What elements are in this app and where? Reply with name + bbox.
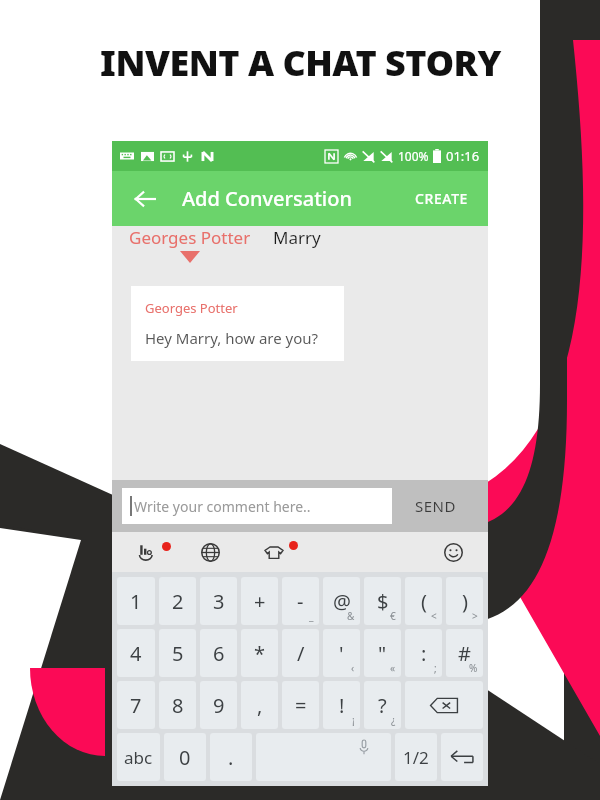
button[interactable]: 4 bbox=[117, 629, 155, 677]
staticText: < bbox=[431, 609, 437, 623]
staticText: & bbox=[347, 609, 355, 623]
button[interactable]: 7 bbox=[117, 681, 155, 729]
staticText: " bbox=[378, 640, 387, 667]
button[interactable]: Backspace bbox=[405, 681, 483, 729]
button[interactable]: 2 bbox=[159, 577, 196, 625]
button[interactable]: Georges Potter bbox=[129, 226, 251, 263]
staticText: > bbox=[472, 609, 478, 623]
staticText: abc bbox=[124, 746, 153, 769]
staticText: 1 bbox=[130, 588, 142, 615]
button[interactable]: Emoji bbox=[438, 537, 468, 567]
staticText: / bbox=[297, 640, 305, 667]
staticText: 2 bbox=[172, 588, 184, 615]
staticText: 8 bbox=[172, 692, 184, 719]
staticText: @ bbox=[333, 588, 351, 615]
staticText: Add Conversation bbox=[182, 185, 353, 212]
button[interactable]: abc bbox=[117, 733, 160, 781]
staticText: 7 bbox=[130, 692, 142, 719]
button[interactable]: = bbox=[282, 681, 319, 729]
button[interactable]: Handwriting bbox=[132, 537, 162, 567]
button[interactable]: Write your comment here.. bbox=[122, 488, 392, 524]
staticText: Hey Marry, how are you? bbox=[145, 328, 319, 348]
button[interactable]: Change language bbox=[195, 537, 225, 567]
button[interactable]: 1 bbox=[117, 577, 155, 625]
button[interactable]: " bbox=[364, 629, 401, 677]
button[interactable]: SEND bbox=[392, 480, 478, 532]
staticText: ‹ bbox=[351, 661, 355, 675]
staticText: € bbox=[390, 609, 396, 623]
button[interactable]: ' bbox=[323, 629, 360, 677]
staticText: 100% bbox=[398, 148, 429, 164]
staticText: - bbox=[297, 588, 304, 615]
button[interactable]: $ bbox=[364, 577, 401, 625]
staticText: # bbox=[458, 640, 471, 667]
staticText: % bbox=[469, 661, 478, 675]
button[interactable]: 5 bbox=[159, 629, 196, 677]
staticText: Marry bbox=[273, 226, 321, 249]
button[interactable]: 3 bbox=[200, 577, 237, 625]
staticText: ; bbox=[434, 661, 437, 675]
staticText: , bbox=[257, 692, 263, 719]
button[interactable]: 9 bbox=[200, 681, 237, 729]
button[interactable]: ? bbox=[364, 681, 401, 729]
staticText: + bbox=[254, 588, 266, 615]
button[interactable]: : bbox=[405, 629, 442, 677]
staticText: 5 bbox=[172, 640, 184, 667]
button[interactable]: * bbox=[241, 629, 278, 677]
staticText: CREATE bbox=[415, 189, 468, 208]
staticText: ) bbox=[462, 588, 468, 615]
staticText: : bbox=[421, 640, 427, 667]
staticText: « bbox=[390, 661, 396, 675]
staticText: 4 bbox=[130, 640, 142, 667]
button[interactable]: Marry bbox=[273, 226, 321, 249]
staticText: 6 bbox=[213, 640, 225, 667]
button[interactable]: ! bbox=[323, 681, 360, 729]
staticText: Georges Potter bbox=[145, 299, 238, 317]
button[interactable]: ( bbox=[405, 577, 442, 625]
staticText: ( bbox=[421, 588, 427, 615]
button[interactable]: / bbox=[282, 629, 319, 677]
button[interactable]: @ bbox=[323, 577, 360, 625]
staticText: ¡ bbox=[352, 713, 355, 727]
button[interactable]: 8 bbox=[159, 681, 196, 729]
staticText: Write your comment here.. bbox=[134, 497, 311, 516]
staticText: = bbox=[295, 692, 307, 719]
staticText: 0 bbox=[179, 744, 191, 771]
staticText: ? bbox=[378, 692, 387, 719]
button[interactable]: 0 bbox=[164, 733, 206, 781]
staticText: INVENT A CHAT STORY bbox=[100, 38, 501, 87]
button[interactable]: . bbox=[210, 733, 252, 781]
staticText: 1/2 bbox=[403, 746, 429, 769]
staticText: 3 bbox=[213, 588, 225, 615]
button[interactable]: Themes bbox=[259, 537, 289, 567]
button[interactable]: Georges Potter bbox=[131, 286, 344, 361]
staticText: _ bbox=[309, 609, 314, 623]
staticText: ! bbox=[339, 692, 345, 719]
button[interactable]: 6 bbox=[200, 629, 237, 677]
staticText: * bbox=[254, 640, 266, 667]
button[interactable]: CREATE bbox=[411, 183, 472, 214]
staticText: $ bbox=[377, 588, 389, 615]
button[interactable]: Enter bbox=[441, 733, 483, 781]
button[interactable]: - bbox=[282, 577, 319, 625]
staticText: Georges Potter bbox=[129, 226, 251, 249]
staticText: . bbox=[228, 744, 234, 771]
button[interactable]: , bbox=[241, 681, 278, 729]
staticText: SEND bbox=[415, 496, 456, 516]
button[interactable]: + bbox=[241, 577, 278, 625]
staticText: ¿ bbox=[391, 713, 396, 727]
staticText: 01:16 bbox=[446, 147, 480, 165]
button[interactable]: # bbox=[446, 629, 483, 677]
button[interactable]: Space bbox=[256, 733, 391, 781]
staticText: 9 bbox=[213, 692, 225, 719]
staticText: ' bbox=[339, 640, 344, 667]
button[interactable]: Back bbox=[128, 182, 162, 216]
button[interactable]: 1/2 bbox=[395, 733, 437, 781]
button[interactable]: ) bbox=[446, 577, 483, 625]
